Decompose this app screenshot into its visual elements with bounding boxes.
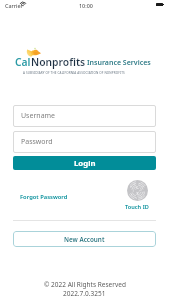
staticText: Cal — [15, 55, 31, 69]
staticText: Username — [21, 111, 56, 121]
button[interactable]: New Account — [13, 231, 156, 247]
staticText: Touch ID — [125, 203, 149, 211]
button[interactable]: Login — [13, 156, 156, 170]
button[interactable]: Forgot Password — [17, 190, 71, 204]
staticText: 10:00 — [79, 2, 93, 9]
button[interactable]: Username — [13, 105, 156, 127]
button[interactable]: Password — [13, 131, 156, 153]
button[interactable]: Touch ID — [121, 180, 153, 211]
staticText: Insurance Services — [87, 58, 151, 68]
staticText: A SUBSIDIARY OF THE CALIFORNIA ASSOCIATI… — [23, 71, 125, 75]
staticText: Forgot Password — [20, 193, 68, 201]
staticText: New Account — [64, 235, 105, 244]
staticText: Nonprofits — [31, 55, 86, 69]
staticText: 2022.7.0.3251 — [63, 289, 106, 298]
staticText: Carrier — [5, 2, 23, 9]
staticText: Login — [74, 158, 96, 169]
staticText: Password — [21, 137, 53, 147]
staticText: © 2022 All Rights Reserved — [44, 280, 126, 289]
